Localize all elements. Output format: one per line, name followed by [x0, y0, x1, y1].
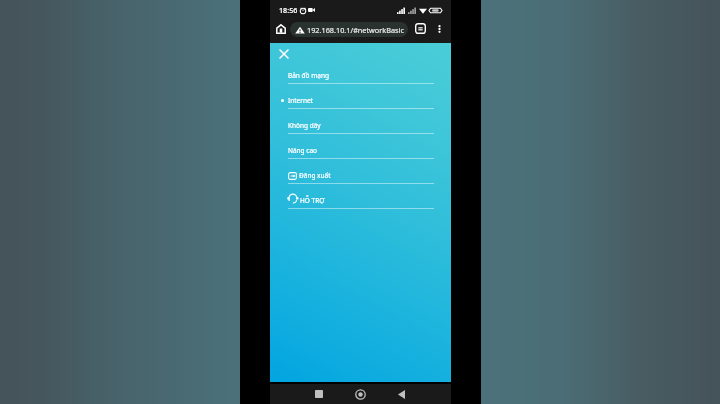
button[interactable]: Close [274, 44, 294, 64]
button[interactable]: More options [432, 21, 447, 36]
button[interactable]: Home [273, 21, 289, 37]
button[interactable]: Home [349, 384, 372, 404]
button[interactable]: Nâng cao [270, 134, 451, 159]
button[interactable]: 192.168.10.1/#networkBasic [290, 22, 408, 37]
staticText: Không dây [288, 121, 321, 130]
staticText: Nâng cao [288, 146, 317, 155]
button[interactable]: Internet [270, 84, 451, 109]
staticText: Đăng xuất [299, 171, 331, 180]
button[interactable]: Recent apps [307, 384, 330, 404]
button[interactable]: Tabs [412, 20, 429, 37]
staticText: 192.168.10.1/#networkBasic [307, 25, 404, 35]
button[interactable]: Không dây [270, 109, 451, 134]
button[interactable]: HỖ TRỢ [270, 184, 451, 209]
button[interactable]: Bản đồ mạng [270, 59, 451, 84]
staticText: 18:56 [279, 5, 298, 15]
staticText: Bản đồ mạng [288, 71, 329, 80]
button[interactable]: Back [390, 384, 413, 404]
staticText: HỖ TRỢ [300, 196, 325, 205]
staticText: Internet [288, 96, 313, 105]
button[interactable]: Đăng xuất [270, 159, 451, 184]
